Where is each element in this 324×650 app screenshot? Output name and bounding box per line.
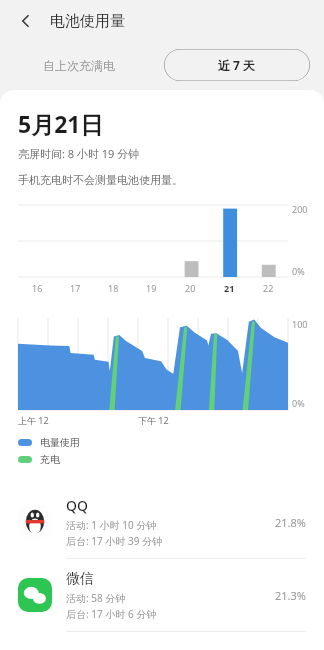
button[interactable]: 微信	[0, 559, 324, 632]
button[interactable]: QQ	[0, 486, 324, 559]
staticText: 电量使用	[40, 436, 80, 449]
staticText: 亮屏时间: 8 小时 19 分钟	[18, 146, 140, 161]
staticText: 活动: 58 分钟	[66, 591, 126, 605]
staticText: 18	[108, 282, 119, 294]
staticText: 16	[32, 282, 43, 294]
staticText: 19	[146, 282, 157, 294]
staticText: 充电	[40, 453, 60, 466]
button[interactable]: 近 7 天	[164, 49, 310, 81]
staticText: 200	[292, 203, 308, 215]
staticText: 手机充电时不会测量电池使用量。	[18, 173, 183, 187]
staticText: 电池使用量	[50, 12, 125, 31]
staticText: 上午 12	[18, 414, 49, 426]
button[interactable]: 自上次充满电	[0, 42, 158, 88]
staticText: 微信	[66, 570, 94, 588]
staticText: 22	[263, 282, 274, 294]
staticText: 100	[292, 318, 308, 330]
staticText: 0%	[292, 397, 305, 409]
button[interactable]: Back	[12, 7, 40, 35]
staticText: QQ	[66, 496, 88, 515]
staticText: 0%	[292, 265, 305, 277]
staticText: 21.3%	[275, 588, 306, 603]
staticText: 20	[185, 282, 196, 294]
staticText: 活动: 1 小时 10 分钟	[66, 518, 157, 532]
staticText: 后台: 17 小时 39 分钟	[66, 534, 162, 548]
staticText: 17	[70, 282, 81, 294]
staticText: 21.8%	[275, 515, 306, 530]
staticText: 后台: 17 小时 6 分钟	[66, 607, 157, 621]
staticText: 近 7 天	[218, 57, 256, 73]
staticText: 自上次充满电	[43, 58, 115, 73]
staticText: 5月21日	[18, 108, 104, 139]
staticText: 21	[224, 282, 235, 294]
staticText: 下午 12	[138, 414, 169, 426]
